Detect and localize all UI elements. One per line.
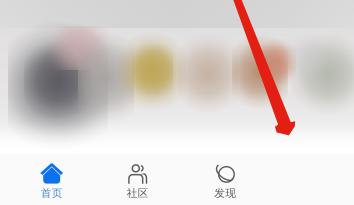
staticText: 社区	[127, 187, 149, 200]
staticText: 发现	[214, 187, 236, 200]
button[interactable]: 发现	[182, 154, 268, 205]
button[interactable]: 首页	[9, 154, 95, 205]
staticText: 首页	[41, 187, 63, 200]
button[interactable]: 社区	[95, 154, 181, 205]
